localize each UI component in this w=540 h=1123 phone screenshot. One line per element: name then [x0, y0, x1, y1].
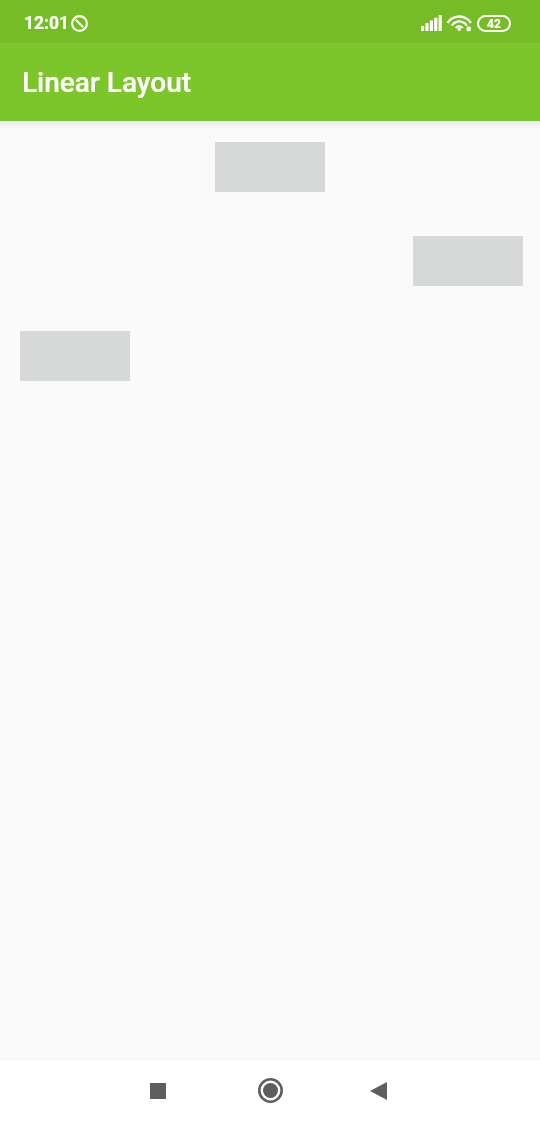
other: Do not disturb: [71, 15, 88, 32]
button[interactable]: Home: [202, 1058, 338, 1123]
button[interactable]: Back: [338, 1058, 418, 1123]
button[interactable]: Recent apps: [114, 1058, 202, 1123]
staticText: 42: [487, 17, 501, 31]
other: Wi-Fi: [450, 15, 471, 32]
staticText: 12:01: [24, 13, 70, 34]
other: Mobile signal: [421, 15, 443, 31]
staticText: Linear Layout: [22, 66, 192, 99]
